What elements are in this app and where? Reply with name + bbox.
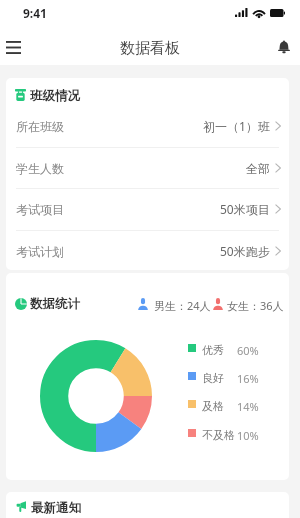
staticText: 男生：24人 (154, 298, 211, 313)
staticText: 数据看板 (120, 39, 180, 58)
button[interactable]: 考试项目 (6, 188, 289, 230)
staticText: 全部 (246, 161, 270, 176)
staticText: 考试计划 (16, 244, 64, 259)
staticText: 50米跑步 (220, 243, 270, 259)
staticText: 优秀 (202, 343, 224, 357)
staticText: 初一（1）班 (203, 118, 270, 134)
staticText: 良好 (202, 371, 224, 385)
staticText: 9:41 (23, 5, 47, 21)
staticText: 最新通知 (31, 500, 81, 516)
button[interactable]: Menu (0, 34, 26, 60)
staticText: 及格 (202, 399, 224, 413)
button[interactable]: 考试计划 (6, 230, 289, 270)
staticText: 10% (237, 428, 259, 443)
button[interactable]: 所在班级 (6, 105, 289, 147)
button[interactable]: 学生人数 (6, 147, 289, 189)
staticText: 班级情况 (30, 88, 80, 104)
staticText: 不及格 (202, 428, 235, 442)
staticText: 女生：36人 (227, 298, 284, 313)
staticText: 60% (237, 343, 259, 358)
staticText: 16% (237, 371, 259, 386)
staticText: 所在班级 (16, 119, 64, 134)
staticText: 数据统计 (30, 296, 80, 312)
staticText: 50米项目 (220, 201, 270, 217)
staticText: 考试项目 (16, 202, 64, 217)
button[interactable]: Notifications (271, 34, 297, 60)
staticText: 14% (237, 399, 259, 414)
staticText: 学生人数 (16, 161, 64, 176)
